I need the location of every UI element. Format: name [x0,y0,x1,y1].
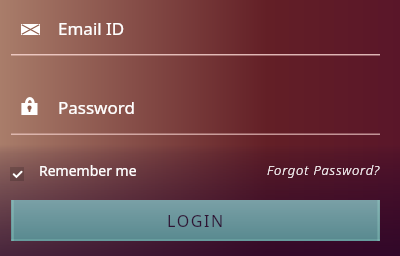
button[interactable]: LOGIN [11,200,380,241]
button[interactable]: Remember me [10,161,137,180]
button[interactable]: Forgot Password? [267,161,381,179]
staticText: Password [58,96,135,119]
staticText: Remember me [39,161,137,180]
staticText: LOGIN [167,210,225,232]
staticText: Forgot Password? [267,161,381,179]
other: Password [21,97,38,115]
staticText: Email ID [58,17,125,40]
other: Email [21,24,40,35]
